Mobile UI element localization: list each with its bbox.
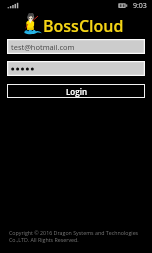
staticText: 9:03 [133,1,147,11]
staticText: BossCloud [43,15,124,37]
staticText: test@hotmail.com [11,42,75,52]
button[interactable] [7,61,145,76]
staticText: Copyright © 2016 Dragon Systems and Tech… [9,229,139,236]
staticText: Login [66,86,87,97]
staticText: Co.,LTD. All Rights Reserved. [9,236,79,243]
button[interactable]: test@hotmail.com [7,39,145,54]
button[interactable]: Login [7,84,145,98]
